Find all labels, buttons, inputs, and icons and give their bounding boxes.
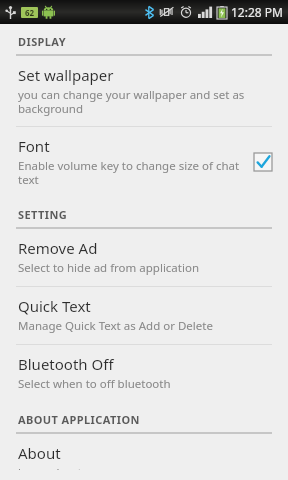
staticText: Set wallpaper (18, 65, 114, 85)
staticText: know about us (18, 465, 98, 470)
button[interactable]: Remove Ad (0, 229, 288, 286)
staticText: About (18, 443, 61, 463)
staticText: you can change your wallpaper and set as… (18, 87, 274, 116)
staticText: Manage Quick Text as Add or Delete (18, 318, 213, 334)
staticText: Select to hide ad from application (18, 260, 200, 276)
staticText: Font (18, 136, 50, 156)
staticText: Enable volume key to change size of chat… (18, 158, 244, 187)
staticText: 12:28 PM (231, 4, 283, 20)
button[interactable]: Bluetooth Off (0, 345, 288, 402)
button[interactable]: Quick Text (0, 287, 288, 344)
staticText: Remove Ad (18, 238, 98, 258)
staticText: 62 (25, 7, 35, 18)
staticText: Quick Text (18, 296, 91, 316)
button[interactable]: About (0, 434, 288, 480)
button[interactable]: Font (0, 127, 288, 197)
staticText: Bluetooth Off (18, 354, 114, 374)
staticText: DISPLAY (18, 34, 67, 49)
staticText: SETTING (18, 207, 68, 222)
button[interactable]: Enable volume key to change font size (252, 151, 274, 173)
button[interactable]: Set wallpaper (0, 56, 288, 126)
staticText: ABOUT APPLICATION (18, 412, 140, 427)
staticText: Select when to off bluetooth (18, 376, 171, 392)
